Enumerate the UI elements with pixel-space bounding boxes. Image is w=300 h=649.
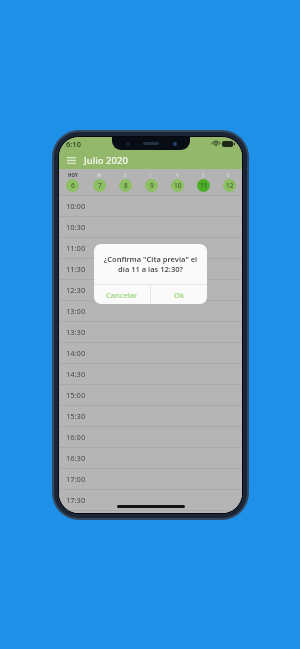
staticText: Cancelar	[106, 290, 138, 300]
button[interactable]: 11:30	[59, 258, 242, 279]
staticText: 14:30	[66, 369, 86, 379]
button[interactable]: X	[112, 169, 138, 195]
staticText: 10:00	[66, 201, 86, 211]
button[interactable]: V	[164, 169, 190, 195]
staticText: 13:30	[66, 327, 86, 337]
staticText: X	[124, 172, 127, 178]
staticText: V	[176, 172, 179, 178]
button[interactable]: 17:00	[59, 468, 242, 489]
staticText: ¿Confirma "Cita previa" el día 11 a las …	[102, 254, 199, 274]
staticText: 12:30	[66, 285, 86, 295]
button[interactable]: D	[216, 169, 242, 195]
staticText: S	[202, 172, 205, 178]
staticText: 8	[124, 181, 128, 190]
staticText: 10	[174, 181, 182, 190]
button[interactable]: Ok	[151, 285, 207, 304]
button[interactable]: 15:00	[59, 384, 242, 405]
button[interactable]: 13:00	[59, 300, 242, 321]
button[interactable]: M	[86, 169, 112, 195]
staticText: 6	[71, 181, 75, 190]
button[interactable]: 16:00	[59, 426, 242, 447]
button[interactable]: 16:30	[59, 447, 242, 468]
button[interactable]: 10:00	[59, 195, 242, 216]
staticText: 17:30	[66, 495, 86, 505]
staticText: 6:10	[66, 139, 81, 149]
staticText: 14:00	[66, 348, 86, 358]
button[interactable]: S	[190, 169, 216, 195]
staticText: Julio 2020	[84, 154, 128, 167]
button[interactable]: 12:30	[59, 279, 242, 300]
staticText: 12	[226, 181, 234, 190]
button[interactable]: 13:30	[59, 321, 242, 342]
button[interactable]: 10:30	[59, 216, 242, 237]
button[interactable]: 17:30	[59, 489, 242, 510]
button[interactable]: HOY	[59, 169, 86, 195]
staticText: 16:00	[66, 432, 86, 442]
button[interactable]: 11:00	[59, 237, 242, 258]
staticText: 15:00	[66, 390, 86, 400]
button[interactable]: J	[138, 169, 164, 195]
staticText: 17:00	[66, 474, 86, 484]
staticText: 11	[200, 181, 208, 190]
staticText: 10:30	[66, 222, 86, 232]
staticText: 13:00	[66, 306, 86, 316]
staticText: 11:00	[66, 243, 86, 253]
button[interactable]: 18:00	[59, 510, 242, 513]
staticText: D	[227, 172, 231, 178]
staticText: 18:00	[66, 510, 86, 513]
staticText: HOY	[68, 172, 78, 178]
button[interactable]: 14:00	[59, 342, 242, 363]
staticText: 9	[150, 181, 154, 190]
button[interactable]: 15:30	[59, 405, 242, 426]
button[interactable]: Open navigation menu	[63, 152, 79, 168]
staticText: Ok	[174, 290, 185, 300]
staticText: 16:30	[66, 453, 86, 463]
staticText: J	[150, 172, 152, 178]
staticText: 15:30	[66, 411, 86, 421]
staticText: 7	[98, 181, 102, 190]
button[interactable]: 14:30	[59, 363, 242, 384]
staticText: M	[97, 172, 102, 178]
staticText: 11:30	[66, 264, 86, 274]
button[interactable]: Cancelar	[94, 285, 150, 304]
